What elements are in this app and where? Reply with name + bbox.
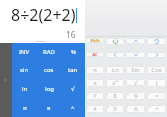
- staticText: Ln: [112, 66, 119, 74]
- staticText: e: [47, 104, 51, 112]
- staticText: π: [23, 104, 27, 112]
- staticText: s: [87, 92, 89, 96]
- staticText: √: [71, 85, 75, 92]
- staticText: 9: [134, 92, 138, 100]
- staticText: x: [93, 79, 97, 87]
- staticText: √: [134, 79, 138, 86]
- staticText: log: [45, 85, 54, 93]
- button[interactable]: ^: [61, 98, 85, 117]
- button[interactable]: x: [86, 79, 104, 87]
- staticText: Sin: [131, 66, 140, 74]
- button[interactable]: Shift: [86, 38, 104, 43]
- button[interactable]: Right: [147, 52, 166, 58]
- staticText: ln: [22, 85, 28, 93]
- staticText: Shift: [90, 38, 100, 43]
- button[interactable]: sin: [12, 61, 37, 79]
- button[interactable]: Down: [126, 52, 145, 58]
- button[interactable]: INV: [12, 43, 37, 61]
- staticText: tan: [68, 66, 78, 74]
- button[interactable]: √: [126, 79, 145, 86]
- staticText: Cos: [151, 66, 162, 74]
- staticText: %: [71, 48, 76, 56]
- button[interactable]: 9: [126, 92, 145, 100]
- staticText: (: [156, 79, 158, 87]
- staticText: π: [93, 66, 97, 74]
- staticText: m: [148, 105, 151, 109]
- button[interactable]: √: [61, 79, 85, 98]
- button[interactable]: x²: [106, 79, 124, 87]
- button[interactable]: π: [12, 98, 37, 117]
- button[interactable]: Ln: [106, 66, 124, 74]
- button[interactable]: Undo: [147, 38, 166, 45]
- staticText: RAD: [43, 48, 55, 56]
- button[interactable]: tan: [61, 61, 85, 79]
- button[interactable]: 8: [106, 92, 124, 100]
- button[interactable]: +: [147, 105, 166, 113]
- staticText: 5: [113, 105, 117, 113]
- staticText: u: [127, 92, 129, 96]
- button[interactable]: Cos: [147, 66, 166, 74]
- button[interactable]: log: [37, 79, 61, 98]
- staticText: k: [107, 105, 109, 109]
- button[interactable]: [85, 0, 167, 36]
- button[interactable]: 4: [86, 105, 104, 113]
- staticText: 6: [134, 105, 138, 113]
- button[interactable]: π: [86, 66, 104, 74]
- button[interactable]: ×: [147, 92, 166, 100]
- staticText: 8÷2(2+2): [11, 4, 76, 26]
- staticText: ^: [71, 104, 75, 112]
- button[interactable]: (: [147, 79, 166, 87]
- staticText: 8: [113, 92, 117, 100]
- button[interactable]: %: [61, 43, 85, 61]
- staticText: 16: [66, 29, 76, 40]
- staticText: l: [127, 105, 128, 109]
- staticText: x²: [112, 79, 118, 87]
- button[interactable]: Sin: [126, 66, 145, 74]
- button[interactable]: Redo: [106, 38, 124, 45]
- button[interactable]: cos: [37, 61, 61, 79]
- button[interactable]: Left: [106, 52, 124, 58]
- staticText: cos: [44, 66, 54, 74]
- staticText: 4: [93, 105, 97, 113]
- staticText: t: [107, 92, 109, 96]
- staticText: >: [4, 77, 7, 84]
- staticText: 7: [93, 92, 97, 100]
- button[interactable]: AC: [86, 52, 104, 57]
- staticText: INV: [19, 48, 30, 56]
- staticText: +: [155, 105, 159, 113]
- staticText: AC: [92, 52, 98, 57]
- button[interactable]: 7: [86, 92, 104, 100]
- staticText: sin: [20, 66, 29, 74]
- button[interactable]: 5: [106, 105, 124, 113]
- button[interactable]: 6: [126, 105, 145, 113]
- button[interactable]: RAD: [37, 43, 61, 61]
- button[interactable]: ln: [12, 79, 37, 98]
- staticText: ×: [155, 92, 159, 100]
- button[interactable]: e: [37, 98, 61, 117]
- button[interactable]: Up: [126, 38, 145, 44]
- staticText: v: [148, 92, 150, 96]
